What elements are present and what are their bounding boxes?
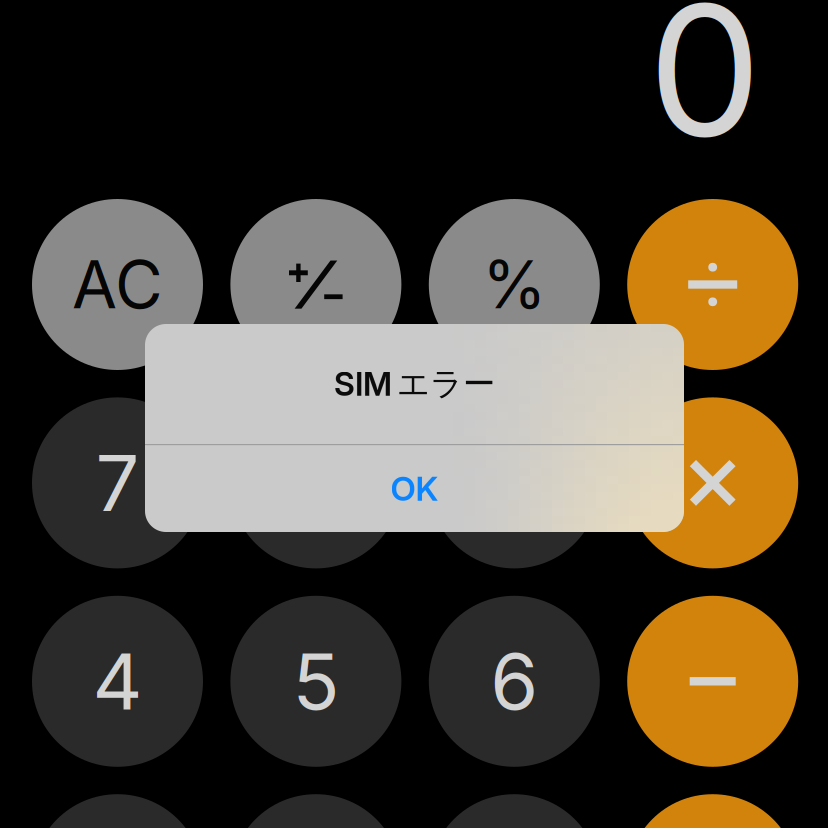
staticText: 5 xyxy=(292,634,339,728)
staticText: 6 xyxy=(490,634,538,728)
button[interactable]: 6 xyxy=(429,596,600,767)
staticText: OK xyxy=(390,468,438,509)
button[interactable]: Divide xyxy=(627,199,798,370)
button[interactable]: 1 xyxy=(32,794,203,828)
staticText: 9 xyxy=(490,436,538,530)
button[interactable]: Multiply xyxy=(627,397,798,568)
button[interactable]: 4 xyxy=(32,596,203,767)
button[interactable]: OK xyxy=(145,445,684,532)
button[interactable]: 2 xyxy=(230,794,401,828)
button[interactable]: Subtract xyxy=(627,596,798,767)
button[interactable]: 3 xyxy=(429,794,600,828)
button[interactable]: Add xyxy=(627,794,798,828)
button[interactable]: Toggle sign xyxy=(230,199,401,370)
button[interactable]: % xyxy=(429,199,600,370)
button[interactable]: 7 xyxy=(32,397,203,568)
staticText: SIM xyxy=(334,364,392,403)
staticText: AC xyxy=(72,245,163,324)
staticText: エラー xyxy=(397,364,495,404)
button[interactable]: 5 xyxy=(230,596,401,767)
button[interactable]: 9 xyxy=(429,397,600,568)
button[interactable]: 8 xyxy=(230,397,401,568)
staticText: % xyxy=(482,245,546,324)
staticText: 7 xyxy=(95,436,139,530)
staticText: 4 xyxy=(92,634,142,728)
button[interactable]: AC xyxy=(32,199,203,370)
staticText: 8 xyxy=(292,436,340,530)
staticText: 0 xyxy=(648,0,762,179)
